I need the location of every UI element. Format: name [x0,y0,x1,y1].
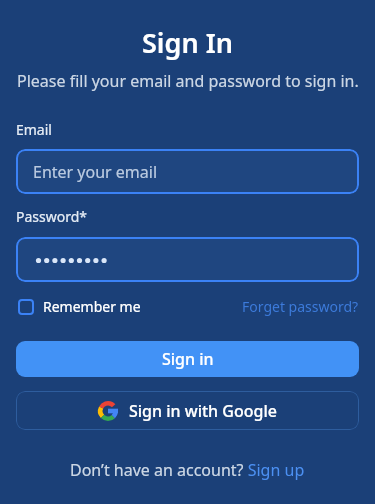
staticText: Remember me [43,297,141,316]
staticText: Please fill your email and password to s… [17,70,359,92]
button[interactable]: Sign in with Google [16,391,359,430]
button[interactable]: Sign in [16,341,359,377]
staticText: Enter your email [33,161,158,183]
button[interactable]: Don’t have an account? Sign up [0,459,375,481]
staticText: Email [16,120,52,139]
button[interactable] [16,237,359,282]
button[interactable] [18,299,34,315]
staticText: Password* [16,207,88,226]
staticText: Sign in [162,348,214,370]
button[interactable]: Forget password? [242,297,359,316]
staticText: Don’t have an account? Sign up [70,459,305,481]
staticText: Forget password? [242,297,359,316]
staticText: Sign In [142,24,233,61]
staticText: Sign in with Google [129,400,277,422]
button[interactable]: Enter your email [16,149,359,194]
